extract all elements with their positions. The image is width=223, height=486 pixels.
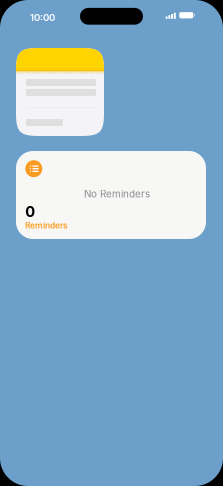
staticText: No Reminders [84,188,150,200]
button[interactable]: Notes [16,48,104,136]
staticText: Reminders [25,220,68,231]
staticText: 10:00 [30,12,55,23]
button[interactable]: No Reminders [16,151,206,239]
staticText: 0 [25,203,35,220]
